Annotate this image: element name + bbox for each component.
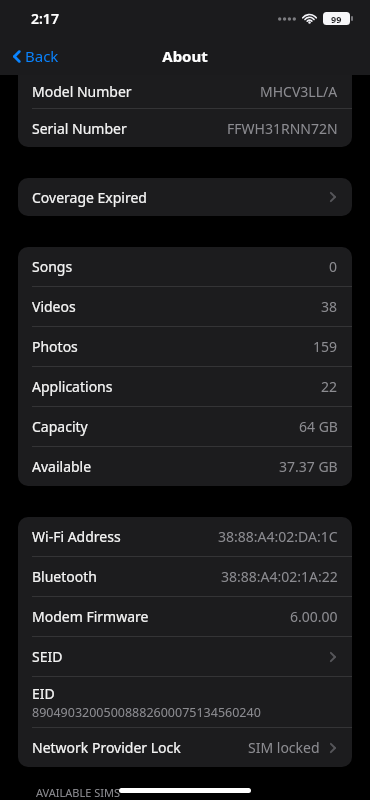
staticText: 64 GB: [299, 417, 338, 436]
staticText: 99: [331, 13, 342, 25]
staticText: Videos: [32, 297, 76, 316]
button[interactable]: Songs: [18, 247, 352, 286]
staticText: Model Number: [32, 82, 132, 101]
button[interactable]: Capacity: [18, 407, 352, 446]
staticText: Network Provider Lock: [32, 738, 181, 757]
staticText: Coverage Expired: [32, 188, 147, 207]
staticText: 37.37 GB: [279, 457, 338, 476]
button[interactable]: Photos: [18, 327, 352, 366]
staticText: Serial Number: [32, 119, 127, 138]
staticText: FFWH31RNN72N: [227, 119, 338, 138]
staticText: Photos: [32, 337, 78, 356]
staticText: Back: [25, 46, 59, 66]
staticText: 6.00.00: [290, 607, 338, 626]
staticText: Capacity: [32, 417, 88, 436]
button[interactable]: EID: [18, 677, 352, 728]
staticText: About: [162, 46, 208, 66]
button[interactable]: Applications: [18, 367, 352, 406]
button[interactable]: Network Provider Lock: [18, 728, 352, 767]
staticText: 38:88:A4:02:DA:1C: [218, 527, 338, 546]
staticText: 2:17: [31, 9, 59, 28]
staticText: EID: [32, 684, 55, 703]
staticText: SIM locked: [248, 738, 320, 757]
staticText: Bluetooth: [32, 567, 97, 586]
staticText: SEID: [32, 647, 63, 666]
staticText: 89049032005008882600075134560240: [32, 704, 261, 721]
staticText: Wi-Fi Address: [32, 527, 121, 546]
staticText: 0: [329, 257, 338, 276]
staticText: 22: [321, 377, 338, 396]
staticText: MHCV3LL/A: [260, 82, 338, 101]
staticText: 38: [321, 297, 338, 316]
other: Back: [10, 47, 22, 66]
staticText: Available: [32, 457, 92, 476]
staticText: Modem Firmware: [32, 607, 149, 626]
button[interactable]: Wi-Fi Address: [18, 517, 352, 556]
button[interactable]: Bluetooth: [18, 557, 352, 596]
button[interactable]: SEID: [18, 637, 352, 676]
button[interactable]: Back: [0, 37, 71, 75]
button[interactable]: Model Number: [18, 75, 352, 108]
button[interactable]: Available: [18, 447, 352, 486]
staticText: AVAILABLE SIMS: [36, 785, 120, 800]
button[interactable]: Coverage Expired: [18, 178, 352, 216]
staticText: Songs: [32, 257, 73, 276]
button[interactable]: Modem Firmware: [18, 597, 352, 636]
staticText: 159: [313, 337, 338, 356]
button[interactable]: Videos: [18, 287, 352, 326]
button[interactable]: Serial Number: [18, 109, 352, 147]
staticText: 38:88:A4:02:1A:22: [221, 567, 338, 586]
staticText: Applications: [32, 377, 113, 396]
